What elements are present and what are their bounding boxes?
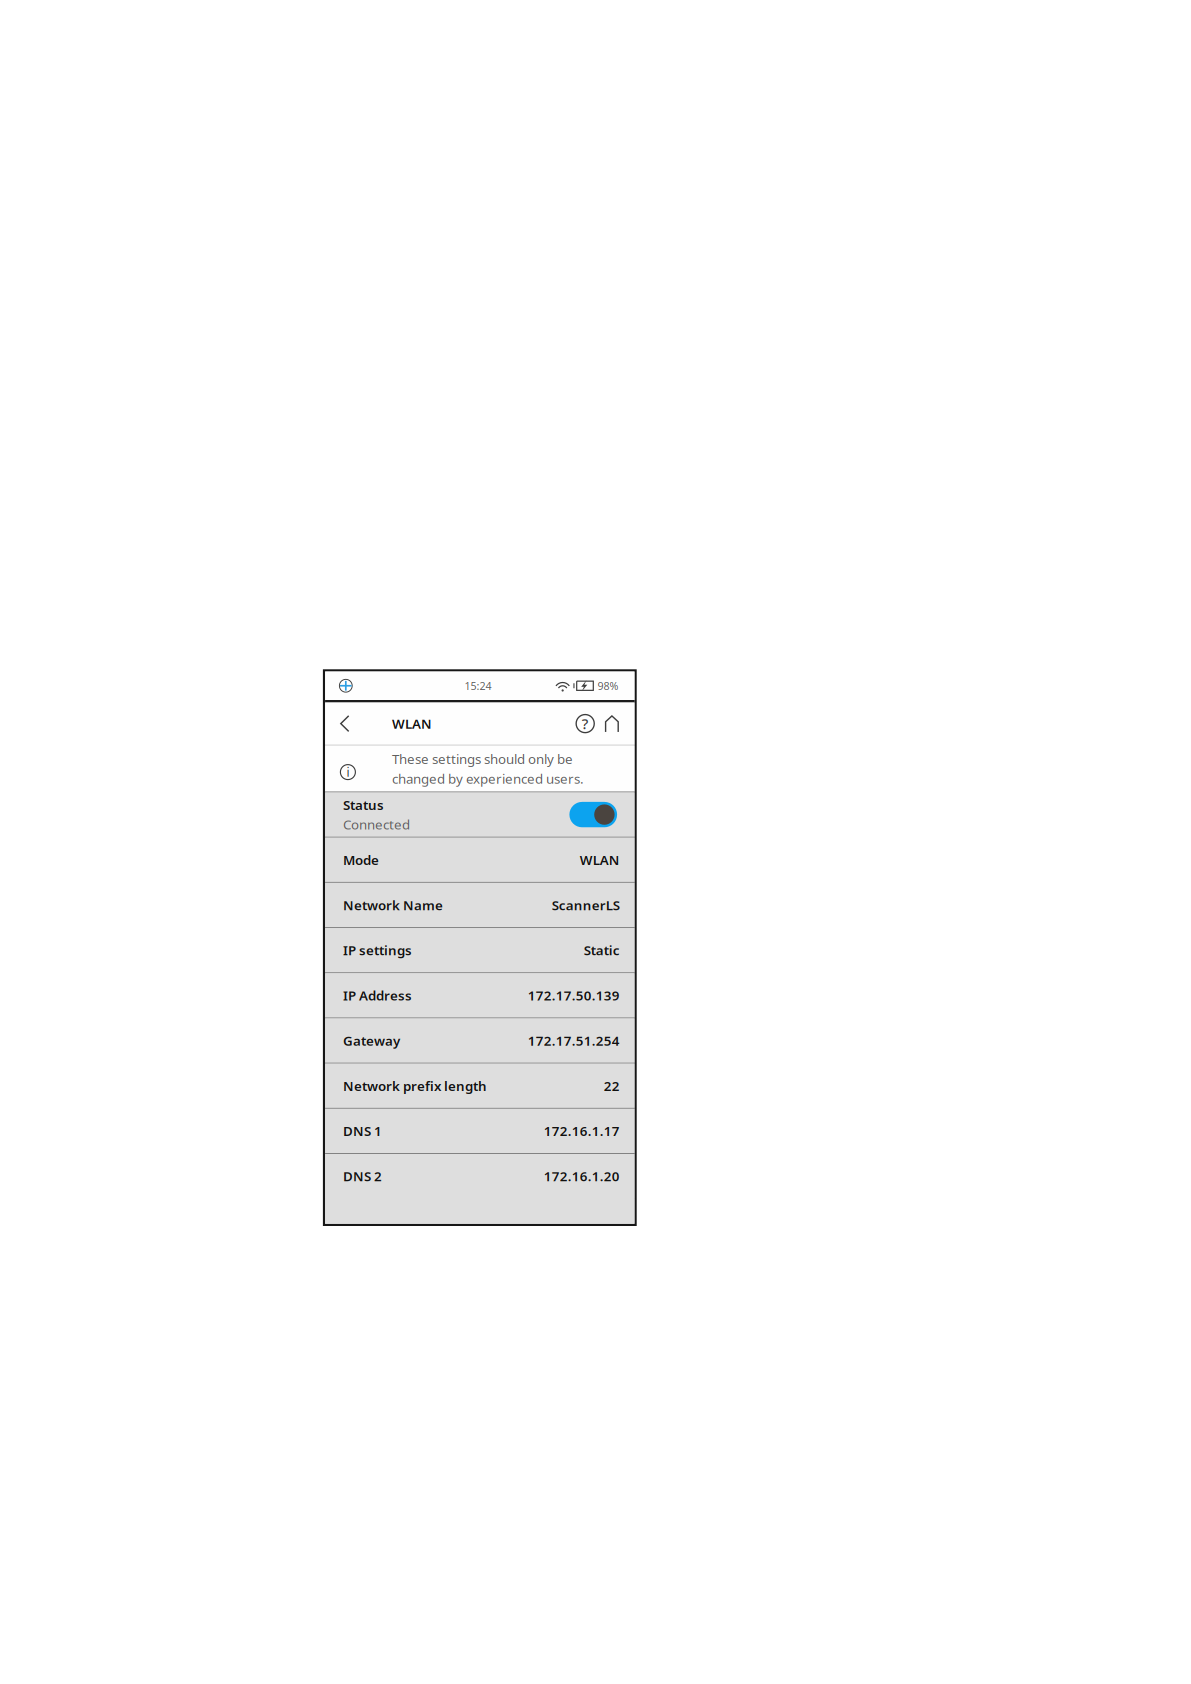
staticText: Connected — [343, 816, 410, 833]
staticText: ? — [582, 714, 589, 733]
staticText: 172.17.51.254 — [528, 1032, 620, 1049]
staticText: These settings should only be — [392, 750, 573, 768]
button[interactable]: IP Address — [325, 973, 634, 1017]
staticText: WLAN — [580, 851, 620, 869]
button[interactable]: Network prefix length — [325, 1064, 634, 1108]
button[interactable]: Home — [605, 702, 619, 745]
button[interactable]: Back — [325, 702, 349, 745]
staticText: 98% — [597, 679, 618, 693]
staticText: 22 — [604, 1077, 620, 1095]
staticText: 172.16.1.17 — [544, 1122, 620, 1140]
staticText: Gateway — [343, 1032, 400, 1049]
staticText: i — [346, 764, 349, 780]
button[interactable]: Help — [572, 702, 598, 745]
staticText: IP Address — [343, 986, 412, 1004]
staticText: ScannerLS — [552, 896, 620, 914]
staticText: WLAN — [392, 715, 432, 732]
button[interactable]: Gateway — [325, 1018, 634, 1063]
staticText: DNS 1 — [343, 1122, 382, 1140]
staticText: Mode — [343, 851, 379, 869]
button[interactable]: Network Name — [325, 883, 634, 927]
button[interactable]: Status — [325, 792, 634, 837]
staticText: 172.17.50.139 — [528, 986, 620, 1004]
button[interactable]: Mode — [325, 838, 634, 882]
staticText: 172.16.1.20 — [544, 1167, 620, 1185]
staticText: changed by experienced users. — [392, 770, 584, 787]
staticText: Network prefix length — [343, 1077, 487, 1095]
staticText: 15:24 — [464, 679, 491, 693]
button[interactable]: DNS 2 — [325, 1154, 634, 1198]
staticText: IP settings — [343, 941, 412, 959]
staticText: Network Name — [343, 896, 443, 914]
button[interactable]: IP settings — [325, 928, 634, 972]
staticText: Static — [584, 941, 620, 959]
staticText: DNS 2 — [343, 1167, 382, 1185]
staticText: Status — [343, 796, 384, 814]
button[interactable]: DNS 1 — [325, 1109, 634, 1153]
